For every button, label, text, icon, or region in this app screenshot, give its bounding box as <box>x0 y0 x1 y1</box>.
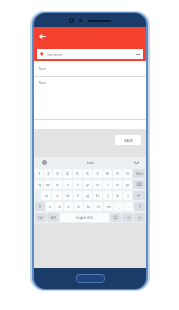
button[interactable]: 7 <box>93 169 102 178</box>
button[interactable]: Home <box>76 274 105 283</box>
button[interactable]: ⌫ <box>133 180 145 189</box>
button[interactable]: t <box>73 180 82 189</box>
staticText: 8 <box>106 171 109 177</box>
button[interactable]: k <box>113 191 122 200</box>
button[interactable]: ◁ <box>122 213 133 222</box>
button[interactable]: j <box>103 191 112 200</box>
staticText: o <box>116 182 119 188</box>
button[interactable]: Back <box>34 27 146 46</box>
button[interactable]: Text <box>34 61 146 76</box>
button[interactable]: text <box>54 157 126 168</box>
button[interactable]: 2 <box>44 169 52 178</box>
staticText: a <box>45 193 48 199</box>
button[interactable]: p <box>123 180 132 189</box>
button[interactable]: !#1 <box>47 213 59 222</box>
staticText: 1 <box>38 171 41 177</box>
button[interactable]: ↵ <box>133 191 145 200</box>
button[interactable]: ☺ <box>110 213 121 222</box>
staticText: q <box>38 182 41 188</box>
staticText: l <box>127 193 129 199</box>
button[interactable]: h <box>93 191 102 200</box>
button[interactable]: z <box>46 202 54 211</box>
button[interactable]: e <box>53 180 62 189</box>
button[interactable]: SAVE <box>115 135 141 145</box>
button[interactable]: f <box>73 191 82 200</box>
staticText: 3 <box>56 171 59 177</box>
staticText: , <box>118 204 120 210</box>
staticText: 2 <box>47 171 50 177</box>
staticText: p <box>126 182 129 188</box>
button[interactable]: u <box>93 180 102 189</box>
button[interactable]: 8 <box>103 169 112 178</box>
staticText: d <box>66 193 69 199</box>
staticText: ☺ <box>113 215 118 220</box>
button[interactable]: b <box>84 202 93 211</box>
button[interactable]: d <box>63 191 72 200</box>
staticText: !#1 <box>50 215 57 221</box>
button[interactable]: v <box>74 202 83 211</box>
button[interactable]: ⇧ <box>134 202 145 211</box>
staticText: 0 <box>126 171 129 177</box>
staticText: g <box>86 193 89 199</box>
staticText: c <box>67 204 70 210</box>
button[interactable]: 9 <box>113 169 122 178</box>
staticText: Text <box>38 80 46 85</box>
staticText: e <box>56 182 59 188</box>
staticText: ◁ <box>126 215 130 220</box>
staticText: 9 <box>116 171 119 177</box>
staticText: b <box>87 204 90 210</box>
staticText: text <box>87 160 94 165</box>
staticText: j <box>107 193 109 199</box>
button[interactable]: l <box>123 191 132 200</box>
button[interactable]: Keyboard settings <box>34 157 54 168</box>
button[interactable]: ▷ <box>134 213 145 222</box>
staticText: 6 <box>86 171 89 177</box>
button[interactable]: 1 <box>35 169 43 178</box>
staticText: h <box>96 193 99 199</box>
button[interactable]: General <box>37 49 143 59</box>
button[interactable]: o <box>113 180 122 189</box>
button[interactable]: m <box>104 202 113 211</box>
button[interactable]: s <box>52 191 62 200</box>
staticText: n <box>97 204 100 210</box>
button[interactable]: English (US) <box>60 213 109 222</box>
button[interactable]: n <box>94 202 103 211</box>
button[interactable]: x <box>55 202 63 211</box>
staticText: ⌫ <box>136 182 142 187</box>
staticText: English (US) <box>76 216 93 220</box>
staticText: m <box>107 204 111 210</box>
button[interactable]: r <box>63 180 72 189</box>
button[interactable]: 5 <box>73 169 82 178</box>
button[interactable]: Hide keyboard <box>126 157 146 168</box>
staticText: z <box>49 204 51 210</box>
button[interactable]: Del <box>133 169 145 178</box>
staticText: k <box>116 193 119 199</box>
button[interactable]: g <box>83 191 92 200</box>
staticText: t <box>77 182 79 188</box>
button[interactable]: w <box>44 180 52 189</box>
staticText: General <box>47 52 62 57</box>
staticText: Text <box>38 66 46 71</box>
staticText: w <box>46 182 50 188</box>
button[interactable]: 3 <box>53 169 62 178</box>
button[interactable]: Ctrl <box>35 213 46 222</box>
button[interactable]: i <box>103 180 112 189</box>
staticText: s <box>56 193 59 199</box>
button[interactable]: c <box>64 202 73 211</box>
button[interactable]: 6 <box>83 169 92 178</box>
button[interactable]: y <box>83 180 92 189</box>
button[interactable]: q <box>35 180 43 189</box>
staticText: x <box>58 204 61 210</box>
staticText: 5 <box>76 171 79 177</box>
staticText: ⇧ <box>138 204 142 209</box>
button[interactable]: a <box>41 191 51 200</box>
staticText: i <box>107 182 109 188</box>
staticText: 7 <box>96 171 99 177</box>
button[interactable]: 4 <box>63 169 72 178</box>
button[interactable]: ⇧ <box>35 202 45 211</box>
button[interactable]: , <box>114 202 123 211</box>
button[interactable]: 0 <box>123 169 132 178</box>
staticText: . <box>128 204 130 210</box>
